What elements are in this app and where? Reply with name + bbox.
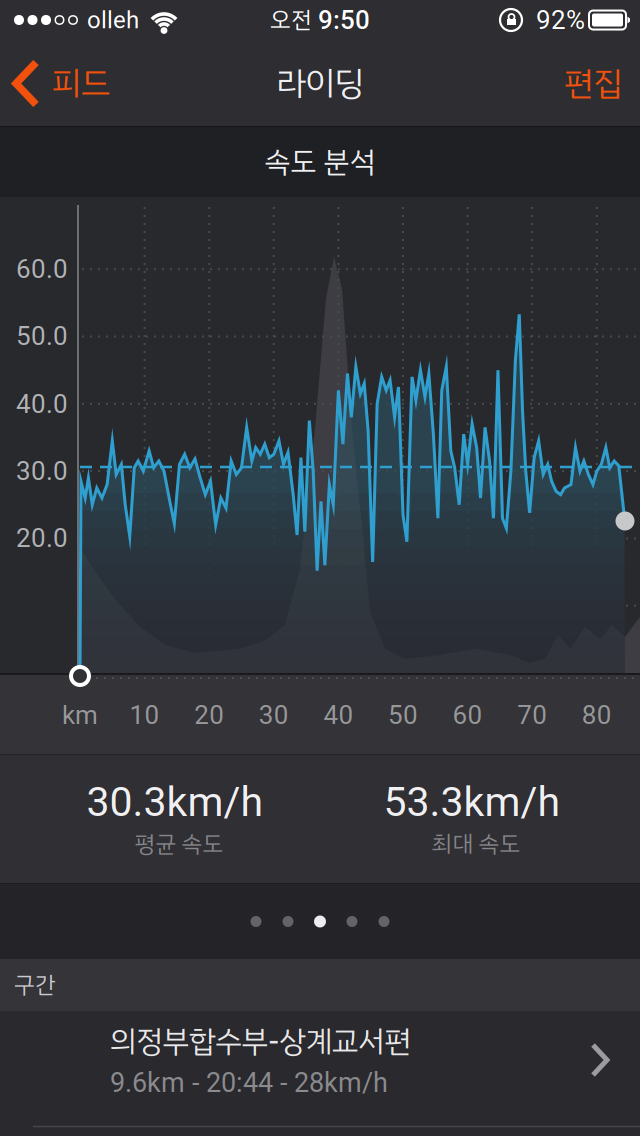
staticText: 속도 분석: [264, 140, 375, 184]
staticText: 53.3km/h: [383, 778, 560, 826]
staticText: 30: [259, 700, 289, 730]
staticText: 9.6km - 20:44 - 28km/h: [110, 1067, 388, 1099]
button[interactable]: 의정부합수부-상계교서편: [0, 1011, 640, 1135]
staticText: 라이딩: [276, 59, 363, 108]
staticText: 구간: [14, 968, 56, 1002]
staticText: olleh: [87, 6, 139, 34]
staticText: 40.0: [16, 389, 68, 419]
staticText: 최대 속도: [431, 827, 520, 861]
staticText: 10: [130, 700, 160, 730]
button[interactable]: 편집: [564, 59, 640, 108]
staticText: 오전: [270, 3, 312, 37]
staticText: 20: [194, 700, 224, 730]
staticText: 70: [517, 700, 547, 730]
staticText: 20.0: [16, 523, 68, 553]
staticText: 평균 속도: [134, 827, 223, 861]
staticText: 의정부합수부-상계교서편: [110, 1019, 411, 1064]
button[interactable]: 페이지 5: [378, 916, 389, 927]
button[interactable]: 페이지 1: [250, 916, 261, 927]
staticText: 30.3km/h: [86, 778, 263, 826]
staticText: 편집: [564, 59, 622, 108]
staticText: 40: [323, 700, 353, 730]
button[interactable]: 페이지 2: [282, 916, 293, 927]
button[interactable]: 페이지 3: [314, 916, 325, 927]
staticText: km: [62, 700, 98, 730]
staticText: 피드: [52, 59, 110, 108]
staticText: 60.0: [16, 254, 68, 284]
button[interactable]: 피드: [0, 59, 110, 108]
staticText: 50: [388, 700, 418, 730]
staticText: 60: [453, 700, 483, 730]
staticText: 92%: [536, 5, 585, 35]
staticText: 30.0: [16, 456, 68, 486]
staticText: 50.0: [16, 321, 68, 351]
staticText: 9:50: [318, 5, 370, 35]
staticText: 80: [582, 700, 612, 730]
button[interactable]: 페이지 4: [346, 916, 357, 927]
